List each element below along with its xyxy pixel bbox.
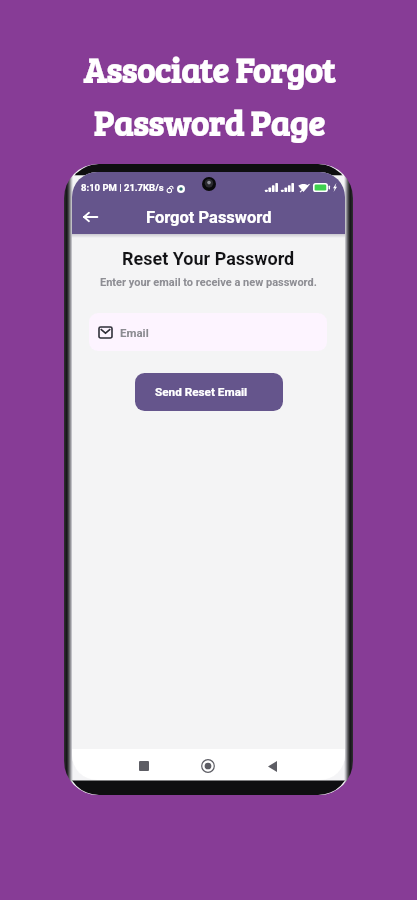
- button[interactable]: Send Reset Email: [135, 373, 283, 411]
- button[interactable]: Home: [194, 752, 222, 780]
- button[interactable]: Back: [77, 204, 103, 230]
- staticText: Send Reset Email: [155, 385, 248, 399]
- staticText: Password Page: [93, 99, 325, 145]
- button[interactable]: Email: [89, 313, 327, 351]
- button[interactable]: Back: [258, 752, 286, 780]
- staticText: 8:10 PM | 21.7KB/s: [81, 182, 164, 193]
- staticText: Reset Your Password: [122, 248, 295, 269]
- button[interactable]: Recent apps: [130, 752, 158, 780]
- staticText: Forgot Password: [146, 208, 272, 227]
- staticText: Enter your email to receive a new passwo…: [100, 276, 317, 289]
- staticText: Email: [120, 326, 149, 339]
- staticText: Associate Forgot: [83, 46, 335, 92]
